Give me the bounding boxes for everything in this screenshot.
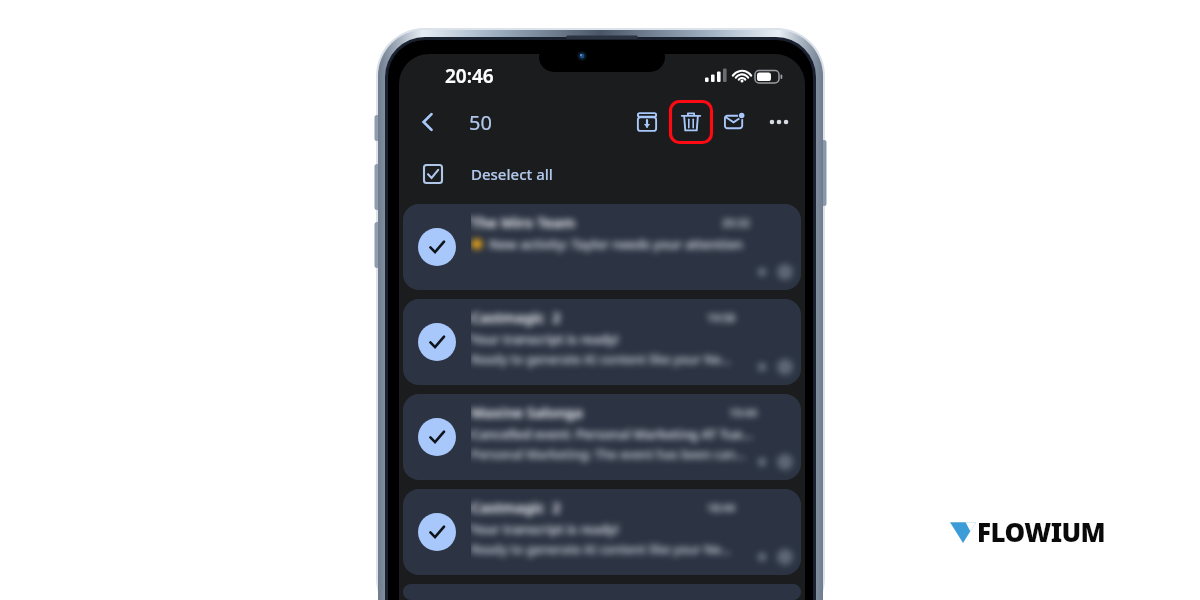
button[interactable]: Selected bbox=[418, 228, 456, 266]
button[interactable]: Archive bbox=[625, 100, 669, 144]
staticText: 20:46 bbox=[445, 63, 494, 89]
button[interactable]: Back bbox=[407, 101, 449, 143]
staticText: 18:44 bbox=[707, 500, 736, 515]
button[interactable]: Selected bbox=[403, 394, 801, 480]
staticText: Your transcript is ready! bbox=[471, 520, 619, 538]
staticText: Ready to generate AI content like your N… bbox=[471, 351, 732, 368]
staticText: Ready to generate AI content like your N… bbox=[471, 541, 732, 558]
staticText: Personal Marketing: The event has been c… bbox=[471, 446, 746, 463]
staticText: Maxine Salonga bbox=[471, 402, 583, 422]
staticText: 20:32 bbox=[722, 215, 751, 230]
staticText: FLOWIUM bbox=[977, 514, 1106, 549]
button[interactable]: Deselect all bbox=[399, 150, 805, 198]
staticText: Your transcript is ready! bbox=[471, 330, 619, 348]
button[interactable]: Delete bbox=[669, 100, 713, 144]
staticText: Cancelled event: Personal Marketing AT T… bbox=[471, 425, 753, 443]
button[interactable]: Selected bbox=[403, 204, 801, 290]
button[interactable]: Selected bbox=[418, 418, 456, 456]
staticText: The Miro Team bbox=[471, 212, 576, 232]
staticText: 19:44 bbox=[729, 405, 758, 420]
staticText: Castmagic 2 bbox=[471, 307, 561, 327]
button[interactable]: Selected bbox=[403, 299, 801, 385]
staticText: New activity: Taylor needs your attentio… bbox=[489, 235, 743, 253]
staticText: 19:58 bbox=[707, 310, 736, 325]
button[interactable]: Selected bbox=[403, 489, 801, 575]
button[interactable]: More options bbox=[757, 100, 801, 144]
button[interactable]: Mark as unread bbox=[713, 100, 757, 144]
staticText: 50 bbox=[469, 109, 492, 136]
staticText: Deselect all bbox=[471, 164, 553, 184]
staticText: Castmagic 2 bbox=[471, 497, 561, 517]
button[interactable]: Selected bbox=[418, 513, 456, 551]
button[interactable] bbox=[403, 584, 801, 600]
button[interactable]: Selected bbox=[418, 323, 456, 361]
